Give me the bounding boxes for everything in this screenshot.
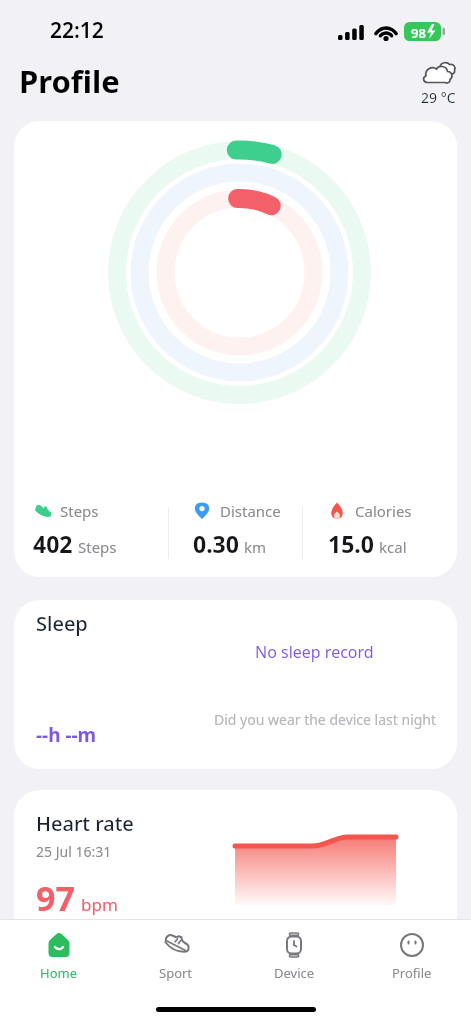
staticText: Heart rate: [36, 810, 134, 837]
button[interactable]: Heart rate: [14, 790, 457, 990]
button[interactable]: Steps: [14, 121, 457, 577]
staticText: Device: [274, 964, 315, 982]
staticText: Sport: [159, 964, 193, 982]
button[interactable]: Device: [235, 930, 353, 982]
staticText: Calories: [355, 501, 412, 521]
staticText: Distance: [220, 501, 281, 521]
staticText: 98: [411, 24, 426, 42]
staticText: Steps: [78, 537, 117, 557]
staticText: bpm: [81, 893, 118, 916]
staticText: Did you wear the device last night: [214, 710, 437, 729]
staticText: kcal: [379, 537, 407, 557]
staticText: Sleep: [36, 610, 88, 637]
staticText: Profile: [19, 60, 120, 102]
staticText: 0.30: [193, 528, 239, 559]
button[interactable]: Profile: [353, 930, 471, 982]
staticText: km: [244, 537, 267, 557]
staticText: 97: [36, 875, 75, 921]
staticText: Steps: [60, 501, 99, 521]
staticText: 22:12: [50, 16, 104, 45]
staticText: 29 °C: [421, 88, 456, 107]
button[interactable]: Sleep: [14, 600, 457, 769]
staticText: 15.0: [328, 528, 374, 559]
button[interactable]: Sport: [117, 930, 235, 982]
staticText: Home: [40, 964, 77, 982]
staticText: --h --m: [36, 722, 97, 748]
staticText: 402: [33, 528, 73, 559]
staticText: 25 Jul 16:31: [36, 842, 112, 861]
button[interactable]: Home: [0, 930, 117, 982]
staticText: No sleep record: [255, 641, 374, 663]
staticText: Profile: [392, 964, 432, 982]
